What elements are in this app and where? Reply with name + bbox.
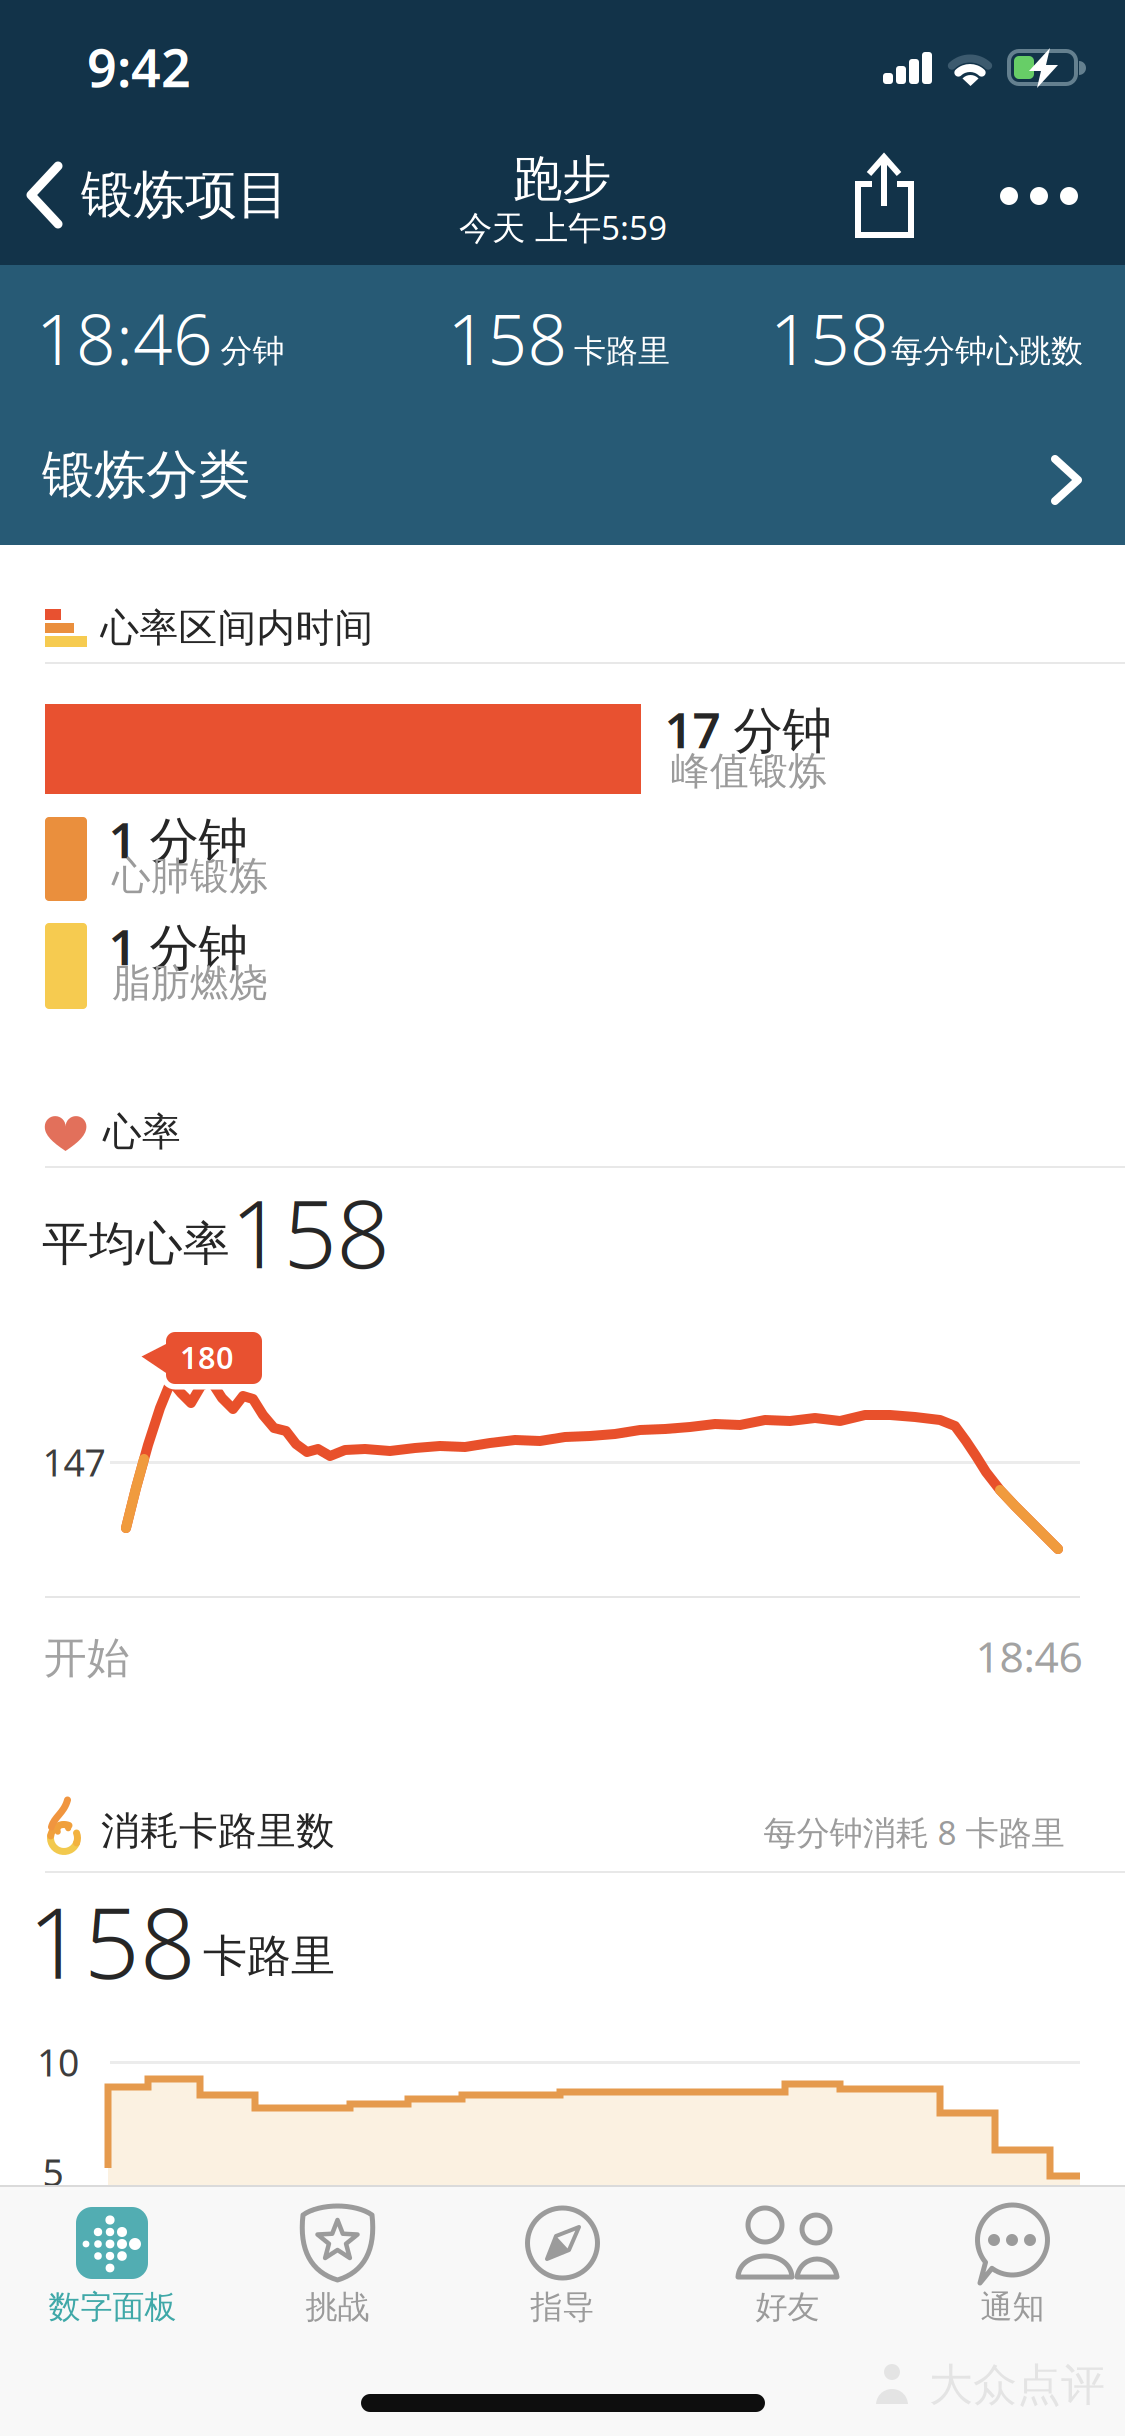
staticText: 158 bbox=[447, 292, 567, 384]
staticText: 挑战 bbox=[305, 2287, 369, 2327]
staticText: 脂肪燃烧 bbox=[112, 959, 268, 1007]
staticText: 180 bbox=[180, 1337, 234, 1377]
staticText: 卡路里 bbox=[574, 331, 670, 371]
staticText: 18:46 bbox=[36, 292, 213, 384]
staticText: 1 分钟 bbox=[108, 806, 247, 872]
staticText: 大众点评 bbox=[929, 2358, 1105, 2412]
staticText: 心肺锻炼 bbox=[112, 852, 268, 900]
staticText: 158 bbox=[770, 292, 890, 384]
button[interactable]: 指导 bbox=[450, 2185, 1125, 2436]
staticText: 158 bbox=[28, 1876, 196, 2006]
button[interactable]: 挑战 bbox=[225, 2185, 1125, 2436]
staticText: 开始 bbox=[44, 1632, 130, 1684]
button[interactable]: 锻炼分类 bbox=[0, 420, 1125, 2436]
staticText: 指导 bbox=[530, 2287, 594, 2327]
staticText: 卡路里 bbox=[203, 1929, 335, 1983]
staticText: 消耗卡路里数 bbox=[101, 1807, 335, 1855]
button[interactable]: 好友 bbox=[675, 2185, 1125, 2436]
button[interactable]: 更多 bbox=[0, 0, 1125, 2436]
staticText: 10 bbox=[37, 2037, 79, 2087]
staticText: 147 bbox=[42, 1437, 105, 1487]
staticText: 好友 bbox=[755, 2287, 819, 2327]
staticText: 每分钟消耗 8 卡路里 bbox=[763, 1810, 1064, 1854]
staticText: 9:42 bbox=[87, 32, 191, 102]
staticText: 分钟 bbox=[220, 331, 284, 371]
staticText: 心率 bbox=[103, 1108, 181, 1156]
staticText: 每分钟心跳数 bbox=[891, 331, 1083, 371]
staticText: 1 分钟 bbox=[108, 913, 247, 979]
staticText: 平均心率 bbox=[42, 1215, 230, 1273]
staticText: 今天 上午5:59 bbox=[459, 205, 667, 249]
staticText: 158 bbox=[230, 1170, 389, 1294]
staticText: 峰值锻炼 bbox=[671, 747, 827, 795]
staticText: 18:46 bbox=[975, 1628, 1082, 1684]
staticText: 数字面板 bbox=[48, 2287, 176, 2327]
button[interactable]: 数字面板 bbox=[0, 2185, 1125, 2436]
staticText: 跑步 bbox=[513, 149, 611, 209]
button[interactable]: 通知 bbox=[900, 2185, 1125, 2436]
staticText: 心率区间内时间 bbox=[100, 604, 373, 652]
staticText: 锻炼分类 bbox=[42, 443, 250, 507]
button[interactable]: 分享 bbox=[0, 0, 1125, 2436]
staticText: 5 bbox=[42, 2147, 63, 2197]
staticText: 锻炼项目 bbox=[81, 163, 289, 227]
button[interactable]: 返回锻炼项目 bbox=[0, 0, 1125, 2436]
staticText: 17 分钟 bbox=[664, 696, 831, 762]
staticText: 通知 bbox=[980, 2287, 1044, 2327]
